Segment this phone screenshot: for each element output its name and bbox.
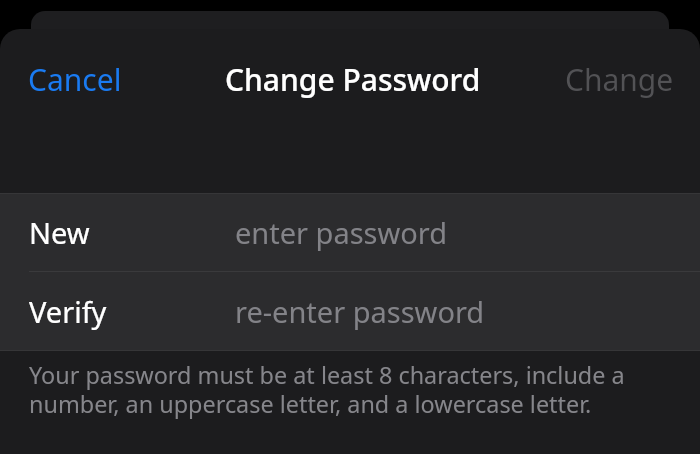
staticText: Change Password (225, 59, 481, 100)
staticText: Your password must be at least 8 charact… (29, 359, 625, 420)
staticText: Cancel (28, 59, 122, 100)
button[interactable]: New (0, 194, 700, 271)
staticText: enter password (235, 213, 448, 252)
button[interactable]: Verify (0, 272, 700, 350)
staticText: Verify (29, 292, 107, 331)
staticText: re-enter password (235, 292, 485, 331)
staticText: Change (565, 59, 674, 100)
staticText: New (29, 213, 90, 252)
button[interactable]: Change (549, 51, 690, 108)
button[interactable]: Cancel (12, 51, 138, 108)
